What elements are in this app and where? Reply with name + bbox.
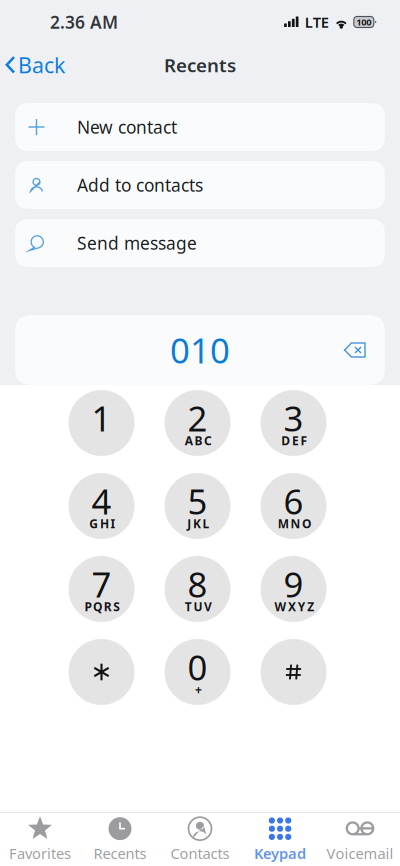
staticText: Voicemail bbox=[326, 844, 393, 863]
staticText: Contacts bbox=[170, 844, 229, 863]
staticText: 0 bbox=[187, 644, 207, 690]
staticText: Keypad bbox=[254, 844, 306, 863]
button[interactable]: 7 bbox=[53, 547, 149, 630]
staticText: 7 bbox=[91, 561, 111, 607]
staticText: 9 bbox=[283, 561, 303, 607]
staticText: Add to contacts bbox=[77, 173, 203, 196]
button[interactable]: 4 bbox=[53, 464, 149, 547]
staticText: + bbox=[195, 681, 202, 697]
button[interactable]: Voicemail bbox=[320, 813, 400, 865]
staticText: PQRS bbox=[84, 598, 120, 614]
button[interactable]: 8 bbox=[149, 547, 245, 630]
staticText: JKL bbox=[187, 515, 209, 531]
staticText: DEF bbox=[281, 432, 307, 448]
staticText: Favorites bbox=[9, 844, 71, 863]
staticText: New contact bbox=[77, 115, 177, 138]
staticText: Send message bbox=[77, 231, 197, 254]
staticText: 1 bbox=[91, 395, 111, 441]
button[interactable]: Add to contacts bbox=[15, 161, 385, 209]
button[interactable]: 3 bbox=[245, 381, 341, 464]
staticText: GHI bbox=[89, 515, 115, 531]
button[interactable]: 6 bbox=[245, 464, 341, 547]
staticText: 100 bbox=[356, 16, 371, 28]
button[interactable]: 1 bbox=[53, 381, 149, 464]
staticText: 2 bbox=[187, 395, 207, 441]
button[interactable]: Keypad bbox=[240, 813, 320, 865]
button[interactable] bbox=[245, 630, 341, 713]
staticText: TUV bbox=[185, 598, 212, 614]
button[interactable]: New contact bbox=[15, 103, 385, 151]
staticText: 3 bbox=[283, 395, 303, 441]
button[interactable]: Recents bbox=[80, 813, 160, 865]
staticText: 010 bbox=[170, 327, 230, 373]
staticText: Recents bbox=[164, 53, 236, 77]
button[interactable]: Delete bbox=[335, 330, 375, 370]
staticText: WXYZ bbox=[274, 598, 314, 614]
button[interactable]: Back bbox=[0, 44, 73, 86]
staticText: 2.36 AM bbox=[50, 10, 118, 33]
staticText: 8 bbox=[187, 561, 207, 607]
button[interactable]: 9 bbox=[245, 547, 341, 630]
staticText: ABC bbox=[185, 432, 212, 448]
staticText: 5 bbox=[187, 478, 207, 524]
button[interactable]: 0 bbox=[149, 630, 245, 713]
staticText: 4 bbox=[91, 478, 111, 524]
button[interactable]: Favorites bbox=[0, 813, 80, 865]
staticText: MNO bbox=[278, 515, 311, 531]
staticText: LTE bbox=[305, 12, 329, 32]
button[interactable]: 2 bbox=[149, 381, 245, 464]
staticText: Back bbox=[18, 51, 65, 79]
button[interactable]: 5 bbox=[149, 464, 245, 547]
button[interactable] bbox=[53, 630, 149, 713]
staticText: Recents bbox=[93, 844, 146, 863]
staticText: 6 bbox=[283, 478, 303, 524]
button[interactable]: Send message bbox=[15, 219, 385, 267]
button[interactable]: Contacts bbox=[160, 813, 240, 865]
